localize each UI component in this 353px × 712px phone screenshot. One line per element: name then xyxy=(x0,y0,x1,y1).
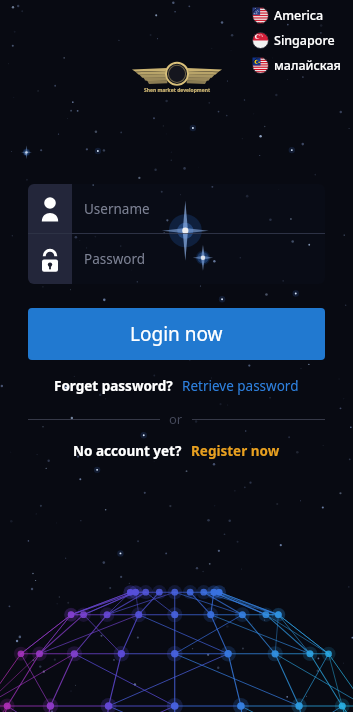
button[interactable]: Login now xyxy=(28,308,325,360)
button[interactable]: малайская xyxy=(248,53,345,78)
staticText: Username xyxy=(84,200,150,218)
staticText: No account yet? xyxy=(73,442,182,460)
button[interactable]: America xyxy=(248,3,328,28)
staticText: Singapore xyxy=(274,32,335,49)
staticText: Shen market development xyxy=(129,87,225,94)
staticText: Password xyxy=(84,250,146,268)
staticText: or xyxy=(169,410,183,428)
button[interactable]: Singapore xyxy=(248,28,339,53)
button[interactable]: Username xyxy=(28,184,325,233)
staticText: Register now xyxy=(191,442,280,460)
staticText: Forget password? xyxy=(54,377,173,395)
staticText: America xyxy=(274,7,324,24)
button[interactable]: Retrieve password xyxy=(182,377,299,395)
staticText: Retrieve password xyxy=(182,377,299,395)
staticText: Login now xyxy=(130,321,223,347)
button[interactable]: Password xyxy=(28,234,325,284)
button[interactable]: Register now xyxy=(191,442,280,460)
staticText: малайская xyxy=(274,57,341,74)
